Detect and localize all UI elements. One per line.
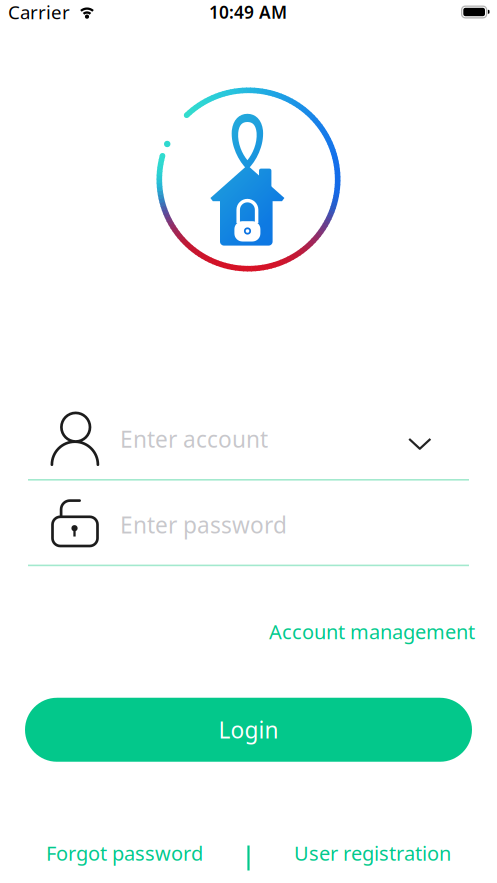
staticText: Enter password (120, 509, 287, 540)
staticText: Account management (269, 618, 475, 645)
staticText: Forgot password (46, 840, 203, 866)
button[interactable]: Show saved accounts (398, 422, 469, 466)
button[interactable]: User registration (248, 835, 496, 871)
staticText: User registration (294, 840, 451, 866)
staticText: Enter account (120, 424, 268, 454)
button[interactable]: Account management (269, 612, 475, 651)
button[interactable]: Login (25, 698, 472, 762)
staticText: 10:49 AM (209, 0, 287, 23)
staticText: Carrier (8, 0, 70, 24)
staticText: Login (218, 715, 278, 745)
button[interactable]: Forgot password (0, 835, 248, 871)
